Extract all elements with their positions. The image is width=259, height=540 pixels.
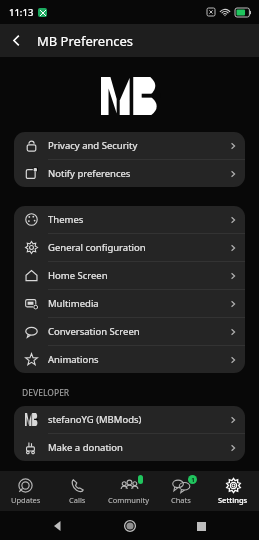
button[interactable]: Back	[44, 512, 72, 540]
staticText: Notify preferences	[48, 167, 221, 180]
staticText: Chats	[171, 495, 191, 505]
button[interactable]: Animations	[14, 346, 245, 373]
button[interactable]: Home	[116, 512, 144, 540]
staticText: stefanoYG (MBMods)	[48, 413, 221, 426]
staticText: Themes	[48, 213, 221, 226]
staticText: Community	[108, 495, 150, 505]
button[interactable]: Back	[0, 24, 33, 57]
staticText: 1	[191, 476, 195, 484]
staticText: 11:13	[9, 6, 34, 19]
button[interactable]: Community	[103, 471, 155, 511]
staticText: Multimedia	[48, 297, 221, 310]
button[interactable]: Make a donation	[14, 434, 245, 461]
button[interactable]: stefanoYG (MBMods)	[14, 406, 245, 433]
staticText: Home Screen	[48, 269, 221, 282]
button[interactable]: Privacy and Security	[14, 132, 245, 159]
staticText: MB Preferences	[37, 32, 134, 50]
staticText: Animations	[48, 353, 221, 366]
button[interactable]: Multimedia	[14, 290, 245, 317]
button[interactable]: Settings	[207, 471, 259, 511]
button[interactable]: Notify preferences	[14, 160, 245, 187]
staticText: Privacy and Security	[48, 139, 221, 152]
staticText: Calls	[69, 495, 86, 505]
staticText: General configuration	[48, 241, 221, 254]
staticText: Updates	[11, 495, 41, 505]
staticText: DEVELOPER	[22, 387, 70, 399]
button[interactable]: Calls	[51, 471, 103, 511]
staticText: Make a donation	[48, 441, 221, 454]
staticText: Settings	[218, 495, 248, 505]
button[interactable]: General configuration	[14, 234, 245, 261]
button[interactable]: Updates	[0, 471, 51, 511]
button[interactable]: Conversation Screen	[14, 318, 245, 345]
button[interactable]: Recents	[187, 512, 215, 540]
button[interactable]: Themes	[14, 206, 245, 233]
button[interactable]: 1	[155, 471, 207, 511]
staticText: Conversation Screen	[48, 325, 221, 338]
button[interactable]: Home Screen	[14, 262, 245, 289]
